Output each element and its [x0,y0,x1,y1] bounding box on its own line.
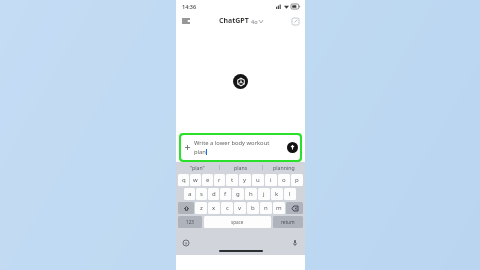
staticText: q [182,176,186,184]
button[interactable]: y [239,174,251,186]
button[interactable]: ChatGPT [219,16,263,26]
staticText: o [282,176,286,184]
button[interactable]: plans [220,162,262,172]
staticText: g [236,190,240,198]
staticText: x [212,204,216,212]
button[interactable]: s [196,188,207,200]
staticText: t [231,176,234,184]
button[interactable]: m [273,202,285,214]
button[interactable]: Emoji [181,238,191,248]
button[interactable]: c [221,202,233,214]
staticText: h [249,190,253,198]
button[interactable]: e [202,174,213,186]
staticText: s [200,190,203,198]
staticText: Write a lower body workout [194,139,270,147]
staticText: 4o [251,18,258,25]
button[interactable]: return [273,216,303,228]
button[interactable]: Add attachment [181,135,300,160]
staticText: l [289,190,291,198]
staticText: n [264,204,268,212]
button[interactable]: f [220,188,231,200]
button[interactable]: a [184,188,195,200]
button[interactable]: Shift [178,202,194,214]
button[interactable]: d [208,188,219,200]
button[interactable]: w [190,174,201,186]
staticText: c [226,204,229,212]
button[interactable]: 123 [178,216,202,228]
button[interactable]: g [232,188,244,200]
staticText: 123 [186,219,194,225]
staticText: y [243,176,247,184]
staticText: z [200,204,203,212]
staticText: w [193,176,198,184]
staticText: ChatGPT [219,16,249,26]
staticText: a [188,190,192,198]
staticText: plan [194,148,206,156]
button[interactable]: "plan" [176,162,219,172]
button[interactable]: z [195,202,207,214]
button[interactable]: n [260,202,272,214]
staticText: 14:36 [182,3,197,10]
button[interactable]: b [247,202,259,214]
button[interactable]: q [178,174,189,186]
button[interactable]: v [234,202,246,214]
staticText: j [263,190,265,198]
button[interactable]: h [245,188,257,200]
staticText: v [238,204,242,212]
button[interactable]: j [258,188,270,200]
button[interactable]: planning [263,162,305,172]
button[interactable]: New chat [289,15,301,27]
staticText: r [218,176,221,184]
button[interactable]: t [226,174,238,186]
staticText: p [295,176,299,184]
button[interactable]: p [291,174,303,186]
button[interactable]: u [252,174,264,186]
button[interactable]: l [284,188,296,200]
staticText: planning [273,164,295,171]
staticText: f [224,190,227,198]
button[interactable]: o [278,174,290,186]
staticText: d [212,190,216,198]
button[interactable]: Dictate [290,238,300,248]
staticText: plans [234,164,248,171]
button[interactable]: r [214,174,225,186]
staticText: return [281,219,295,225]
button[interactable]: Add attachment [183,143,192,152]
staticText: m [276,204,282,212]
button[interactable]: Backspace [286,202,303,214]
staticText: space [231,219,244,225]
button[interactable]: i [265,174,277,186]
staticText: "plan" [190,164,205,171]
staticText: k [275,190,279,198]
button[interactable]: Menu [180,15,192,27]
button[interactable]: space [204,216,271,228]
staticText: i [270,176,272,184]
staticText: u [256,176,260,184]
staticText: e [206,176,210,184]
staticText: b [251,204,255,212]
button[interactable]: x [208,202,220,214]
button[interactable]: Send [287,142,298,153]
button[interactable]: k [271,188,283,200]
